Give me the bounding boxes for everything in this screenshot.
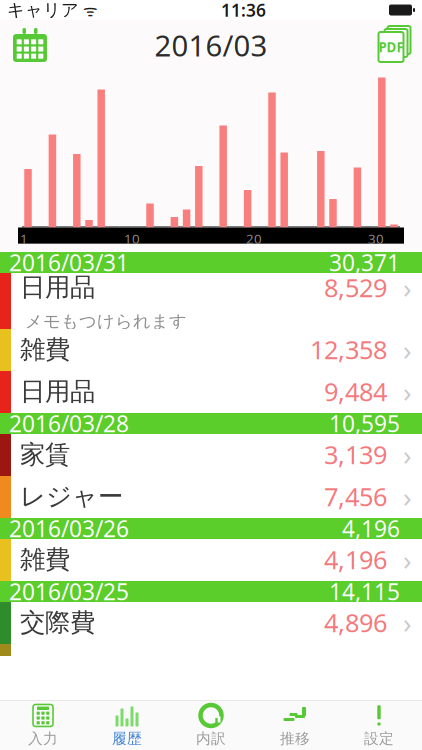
staticText: PDF [378, 38, 403, 56]
staticText: 雑費 [20, 334, 70, 365]
staticText: 2016/03/31 [9, 247, 129, 277]
button[interactable]: カレンダー [0, 21, 74, 69]
staticText: 1 [20, 230, 28, 247]
staticText: レジャー [20, 481, 123, 512]
staticText: 8,529 [324, 270, 387, 304]
button[interactable]: 日用品 [0, 371, 422, 413]
staticText: 20 [246, 230, 262, 247]
staticText: キャリア [7, 0, 79, 21]
staticText: 10,595 [329, 408, 400, 438]
button[interactable]: 入力 [1, 701, 85, 750]
button[interactable]: 雑費 [0, 539, 422, 581]
staticText: 7,456 [324, 480, 387, 513]
staticText: 30,371 [329, 247, 400, 277]
staticText: 家賃 [20, 439, 70, 470]
staticText: 入力 [28, 729, 58, 747]
staticText: 30 [368, 230, 384, 247]
button[interactable]: 内訳 [169, 701, 253, 750]
staticText: › [403, 604, 412, 641]
button[interactable]: PDF を書き出す [348, 21, 422, 69]
staticText: › [403, 373, 412, 410]
staticText: 3,139 [324, 438, 387, 471]
staticText: 履歴 [112, 729, 142, 747]
button[interactable]: レジャー [0, 476, 422, 518]
staticText: › [403, 436, 412, 473]
staticText: 設定 [364, 729, 394, 747]
staticText: 内訳 [196, 729, 226, 747]
button[interactable]: 家賃 [0, 434, 422, 476]
staticText: 12,358 [310, 333, 387, 366]
staticText: 交際費 [20, 607, 95, 638]
staticText: 4,896 [324, 606, 387, 639]
staticText: 10 [124, 230, 140, 247]
button[interactable]: 推移 [253, 701, 337, 750]
button[interactable]: 日用品 [0, 273, 422, 329]
button[interactable]: 設定 [337, 701, 421, 750]
button[interactable]: 雑費 [0, 329, 422, 371]
staticText: 2016/03/28 [9, 408, 129, 438]
staticText: › [403, 331, 412, 368]
staticText: 日用品 [20, 272, 95, 303]
staticText: 日用品 [20, 376, 95, 407]
staticText: 14,115 [329, 576, 400, 606]
staticText: 推移 [280, 729, 310, 747]
staticText: › [403, 269, 412, 306]
button[interactable]: 交際費 [0, 602, 422, 644]
staticText: 2016/03/25 [9, 576, 129, 606]
staticText: 2016/03/26 [9, 513, 129, 543]
staticText: メモもつけられます [25, 311, 187, 332]
staticText: 2016/03 [154, 25, 267, 64]
staticText: 9,484 [324, 375, 387, 408]
staticText: 4,196 [324, 543, 387, 576]
button[interactable]: 履歴 [85, 701, 169, 750]
staticText: › [403, 478, 412, 515]
staticText: 11:36 [221, 0, 266, 21]
staticText: 4,196 [342, 513, 400, 543]
staticText: ᯤ [79, 0, 98, 21]
staticText: 雑費 [20, 544, 70, 575]
staticText: › [403, 541, 412, 578]
